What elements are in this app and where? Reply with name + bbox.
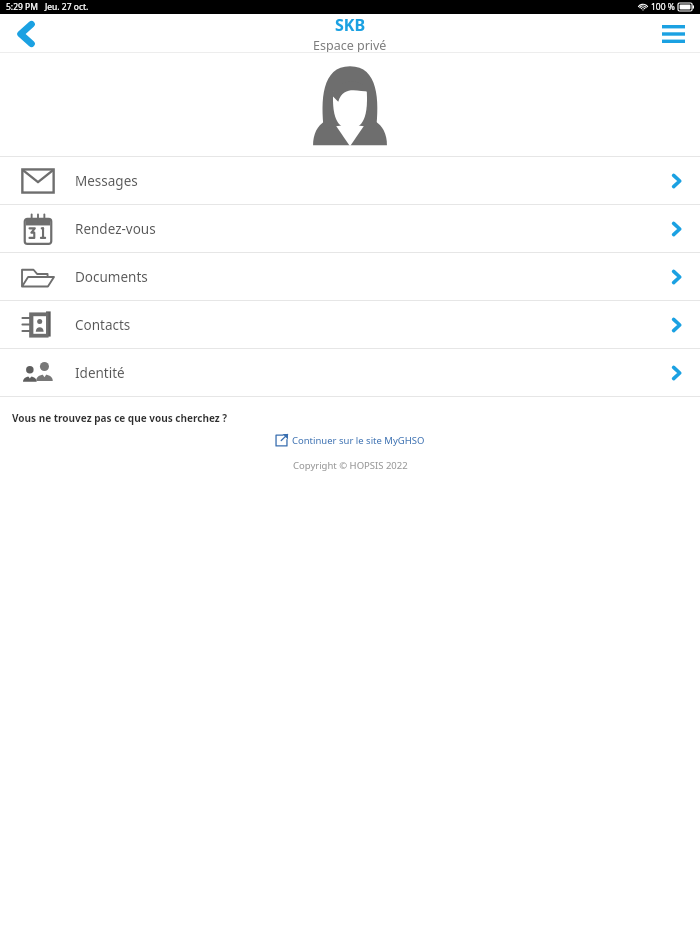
staticText: Espace privé xyxy=(313,37,387,53)
staticText: Copyright © HOPSIS 2022 xyxy=(293,459,408,472)
button[interactable]: Menu xyxy=(646,14,700,53)
staticText: Messages xyxy=(75,172,138,190)
staticText: Contacts xyxy=(75,316,131,334)
staticText: Identité xyxy=(75,364,125,382)
button[interactable]: Identité xyxy=(0,349,700,396)
staticText: Rendez-vous xyxy=(75,220,156,238)
button[interactable]: Contacts xyxy=(0,301,700,348)
button[interactable]: Rendez-vous xyxy=(0,205,700,252)
staticText: Continuer sur le site MyGHSO xyxy=(292,434,425,447)
button[interactable]: Documents xyxy=(0,253,700,300)
staticText: Jeu. 27 oct. xyxy=(45,1,89,13)
staticText: Documents xyxy=(75,268,148,286)
staticText: Vous ne trouvez pas ce que vous cherchez… xyxy=(12,411,228,425)
button[interactable]: Messages xyxy=(0,157,700,204)
button[interactable]: Continuer sur le site MyGHSO xyxy=(275,434,425,447)
button[interactable]: Back xyxy=(0,14,54,53)
staticText: 100 % xyxy=(651,1,675,13)
staticText: SKB xyxy=(335,14,366,36)
staticText: 5:29 PM xyxy=(6,1,38,13)
